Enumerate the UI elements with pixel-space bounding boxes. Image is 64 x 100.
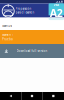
button[interactable]: Examen 1 <box>0 30 64 44</box>
staticText: DELE <box>54 3 59 6</box>
button[interactable]: Download full version <box>0 44 64 58</box>
staticText: para el examen <box>15 11 34 14</box>
staticText: Preparación <box>15 7 31 10</box>
button[interactable]: Recent apps <box>43 92 64 100</box>
staticText: A2 <box>50 6 63 20</box>
staticText: Exam List <box>2 24 12 28</box>
button[interactable]: Home <box>21 92 43 100</box>
staticText: Prueba <box>2 37 12 41</box>
button[interactable]: Back <box>0 92 21 100</box>
staticText: Examen 1 <box>2 33 14 36</box>
staticText: Download full version <box>16 49 47 53</box>
